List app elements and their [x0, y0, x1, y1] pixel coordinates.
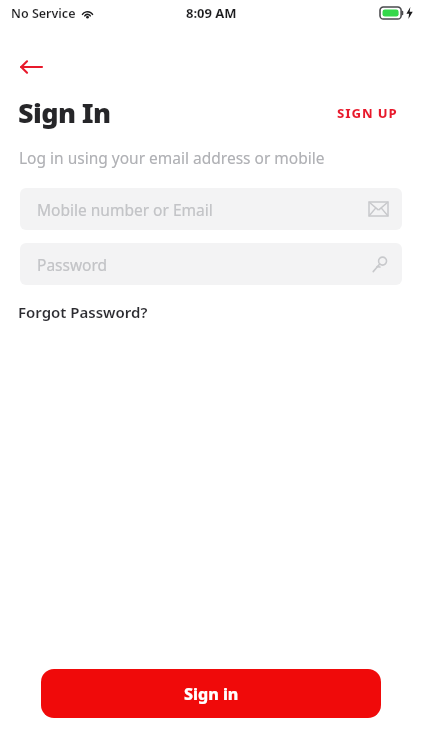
button[interactable]: Password — [20, 243, 402, 285]
button[interactable]: Forgot Password? — [16, 299, 150, 325]
staticText: Log in using your email address or mobil… — [19, 147, 325, 168]
staticText: Mobile number or Email — [37, 199, 213, 220]
staticText: Sign in — [184, 683, 239, 705]
button[interactable]: Mobile number or Email — [20, 188, 402, 230]
other: Email — [369, 202, 388, 216]
staticText: 8:09 AM — [186, 4, 237, 22]
button[interactable]: SIGN UP — [333, 100, 402, 126]
staticText: Password — [37, 254, 108, 275]
staticText: Sign In — [18, 94, 111, 131]
button[interactable]: Sign in — [41, 669, 381, 718]
other: Password — [371, 256, 388, 273]
staticText: Forgot Password? — [18, 302, 148, 322]
staticText: SIGN UP — [337, 104, 398, 122]
staticText: No Service — [11, 5, 76, 22]
button[interactable]: Back — [10, 46, 52, 88]
